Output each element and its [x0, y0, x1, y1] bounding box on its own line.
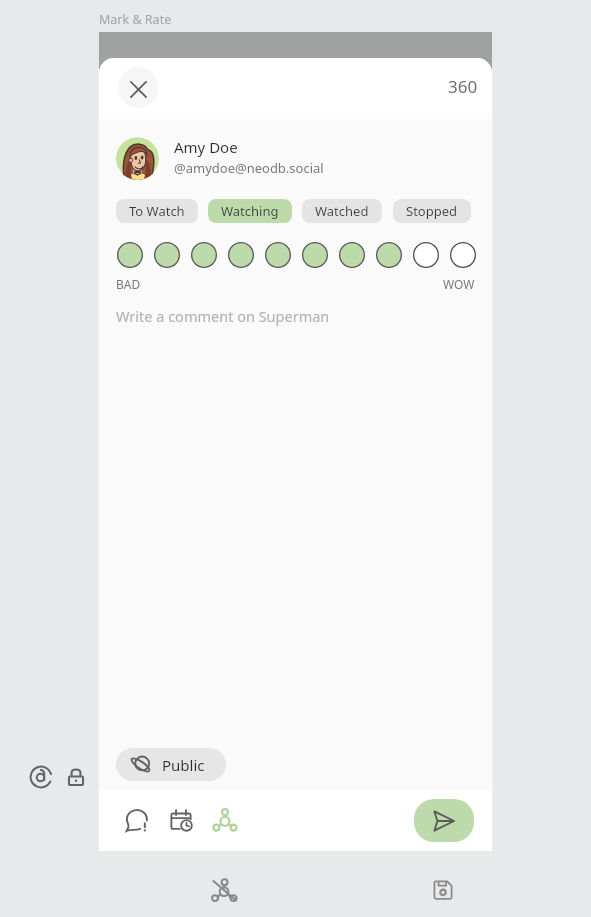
staticText: Watched — [315, 202, 369, 220]
button[interactable]: Rate 6 — [302, 242, 328, 268]
staticText: WOW — [443, 276, 475, 292]
button[interactable]: Rate 4 — [228, 242, 254, 268]
button[interactable]: Mention — [28, 764, 54, 790]
button[interactable]: Visibility lock — [63, 764, 89, 790]
staticText: To Watch — [129, 202, 185, 220]
staticText: Stopped — [406, 202, 458, 220]
button[interactable]: Rate 2 — [154, 242, 180, 268]
staticText: BAD — [116, 276, 141, 292]
button[interactable]: Rate 3 — [191, 242, 217, 268]
button[interactable]: Watched — [302, 199, 382, 223]
button[interactable]: Stopped — [393, 199, 471, 223]
button[interactable]: Content warning — [124, 807, 150, 833]
button[interactable]: Crosspost — [212, 807, 238, 833]
button[interactable]: Rate 9 — [413, 242, 439, 268]
button[interactable]: Send — [414, 799, 474, 842]
staticText: @amydoe@neodb.social — [174, 159, 324, 177]
button[interactable]: Share off — [210, 876, 238, 904]
button[interactable]: Write a comment on Superman — [99, 294, 492, 724]
button[interactable]: Watching — [208, 199, 292, 223]
staticText: Watching — [221, 202, 279, 220]
button[interactable]: Rate 1 — [117, 242, 143, 268]
staticText: Write a comment on Superman — [116, 306, 330, 326]
button[interactable]: Rate 7 — [339, 242, 365, 268]
staticText: Mark & Rate — [99, 11, 172, 28]
button[interactable]: Schedule post — [168, 807, 194, 833]
button[interactable]: Public — [116, 748, 226, 781]
button[interactable]: Close — [118, 67, 159, 108]
button[interactable]: Save — [430, 877, 456, 903]
button[interactable]: Rate 10 — [450, 242, 476, 268]
staticText: Public — [162, 755, 205, 775]
button[interactable]: Rate 5 — [265, 242, 291, 268]
staticText: 360 — [448, 75, 478, 98]
button[interactable]: Rate 8 — [376, 242, 402, 268]
staticText: Amy Doe — [174, 137, 238, 157]
button[interactable]: To Watch — [116, 199, 198, 223]
